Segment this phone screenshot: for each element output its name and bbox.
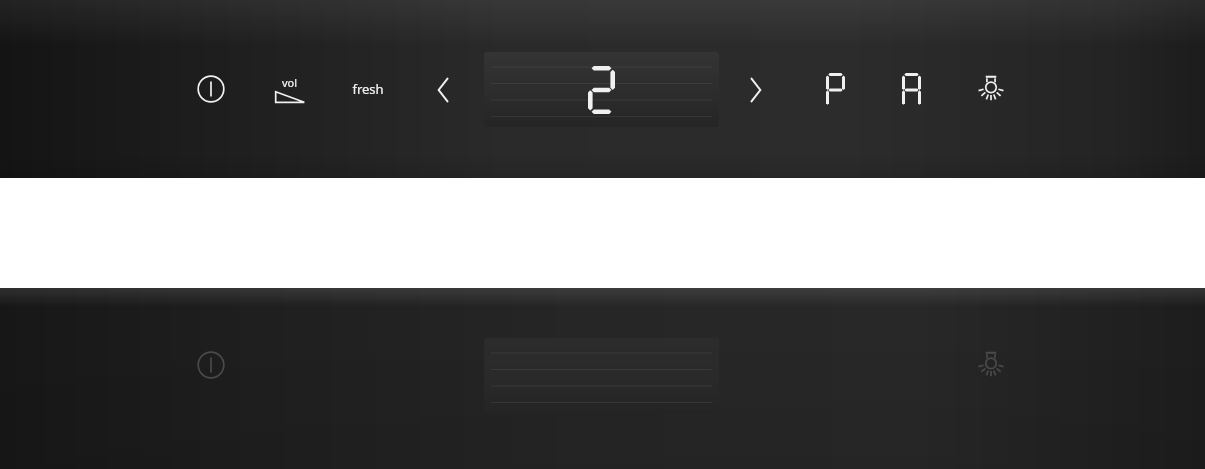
- button[interactable]: Power: [195, 349, 227, 381]
- button[interactable]: Previous: [427, 70, 457, 110]
- button[interactable]: Program: [818, 71, 852, 109]
- button[interactable]: Light: [973, 347, 1009, 383]
- button[interactable]: [484, 338, 719, 413]
- button[interactable]: Light: [973, 71, 1009, 107]
- button[interactable]: Power: [195, 73, 227, 105]
- button[interactable]: Volume: [269, 66, 311, 112]
- button[interactable]: Auto: [894, 71, 928, 109]
- button[interactable]: Next: [742, 70, 772, 110]
- button[interactable]: [484, 52, 719, 127]
- staticText: vol: [282, 75, 298, 90]
- button[interactable]: fresh: [340, 74, 396, 104]
- staticText: fresh: [352, 80, 384, 98]
